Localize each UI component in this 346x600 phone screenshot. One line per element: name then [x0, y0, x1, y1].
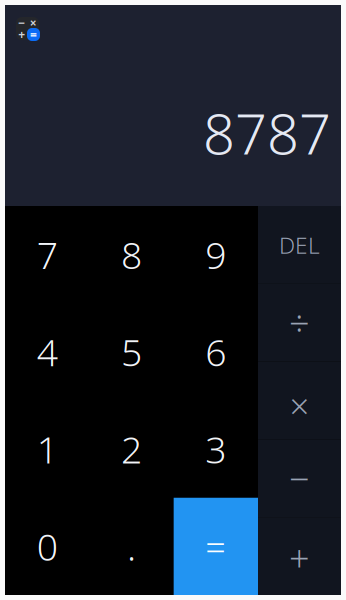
button[interactable]: Calculator	[16, 17, 39, 40]
staticText: ×	[30, 15, 37, 31]
staticText: 1	[37, 424, 58, 474]
button[interactable]: 8	[89, 206, 174, 303]
staticText: −	[289, 454, 310, 502]
button[interactable]: Divide	[258, 284, 341, 362]
button[interactable]: Delete	[258, 206, 341, 284]
button[interactable]: 1	[5, 400, 89, 498]
button[interactable]: 6	[174, 303, 258, 400]
staticText: DEL	[279, 230, 320, 260]
button[interactable]: 7	[5, 206, 89, 303]
button[interactable]: 2	[89, 400, 174, 498]
staticText: 7	[37, 230, 58, 279]
staticText: 6	[205, 327, 226, 377]
staticText: 2	[121, 424, 142, 474]
staticText: ÷	[289, 299, 310, 347]
staticText: =	[30, 26, 37, 42]
button[interactable]: Decimal point	[89, 498, 174, 595]
staticText: +	[18, 26, 25, 42]
staticText: ×	[289, 382, 309, 428]
staticText: 4	[37, 327, 58, 377]
staticText: −	[18, 15, 25, 31]
staticText: =	[205, 522, 226, 570]
staticText: 9	[205, 230, 226, 279]
button[interactable]: 4	[5, 303, 89, 400]
staticText: 0	[37, 522, 58, 571]
button[interactable]: 0	[5, 498, 89, 595]
button[interactable]: Subtract	[258, 439, 341, 517]
button[interactable]: Equals	[174, 498, 258, 595]
staticText: 3	[205, 424, 226, 474]
staticText: 5	[121, 327, 142, 377]
staticText: 8787	[203, 96, 331, 170]
staticText: .	[127, 522, 136, 571]
button[interactable]: 9	[174, 206, 258, 303]
button[interactable]: 5	[89, 303, 174, 400]
button[interactable]: 3	[174, 400, 258, 498]
staticText: 8	[121, 230, 142, 279]
button[interactable]: Multiply	[258, 362, 341, 439]
button[interactable]: Add	[258, 517, 341, 595]
staticText: +	[289, 534, 310, 581]
